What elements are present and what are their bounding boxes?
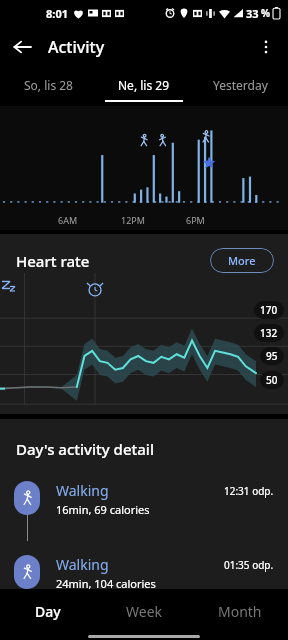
button[interactable]: Walking [0, 481, 288, 541]
staticText: Day [35, 602, 61, 621]
staticText: So, lis 28 [24, 77, 73, 93]
staticText: Yesterday [213, 77, 268, 93]
button[interactable]: Ne, lis 29 [96, 68, 192, 102]
button[interactable]: More [210, 248, 274, 273]
staticText: Walking [56, 555, 109, 574]
button[interactable]: Week [96, 589, 192, 633]
staticText: 01:35 odp. [224, 558, 274, 572]
staticText: 95 [266, 349, 278, 363]
staticText: Ne, lis 29 [118, 77, 170, 93]
staticText: More [228, 253, 256, 268]
button[interactable]: More options [244, 26, 288, 68]
staticText: 8:01 [46, 6, 68, 21]
button[interactable]: Day [0, 589, 96, 633]
staticText: Heart rate [16, 251, 90, 271]
button[interactable]: Walking [0, 555, 288, 589]
staticText: 6PM [186, 214, 205, 226]
staticText: 6AM [58, 214, 78, 226]
staticText: Month [218, 602, 262, 621]
button[interactable]: So, lis 28 [0, 68, 96, 102]
staticText: 33 [246, 6, 259, 21]
staticText: 50 [266, 373, 278, 387]
staticText: % [261, 6, 271, 20]
staticText: Activity [48, 36, 105, 58]
staticText: 170 [260, 303, 278, 317]
staticText: 16min, 69 calories [56, 502, 150, 517]
staticText: 132 [260, 326, 278, 340]
button[interactable]: Month [192, 589, 288, 633]
button[interactable]: Back [0, 26, 44, 68]
button[interactable]: Yesterday [192, 68, 288, 102]
staticText: Day's activity detail [16, 439, 154, 459]
staticText: 12:31 odp. [224, 484, 274, 498]
button[interactable]: 6AM [0, 106, 288, 230]
staticText: 12PM [121, 214, 145, 226]
staticText: Walking [56, 481, 109, 500]
staticText: 24min, 104 calories [56, 576, 156, 589]
staticText: Week [126, 602, 163, 621]
